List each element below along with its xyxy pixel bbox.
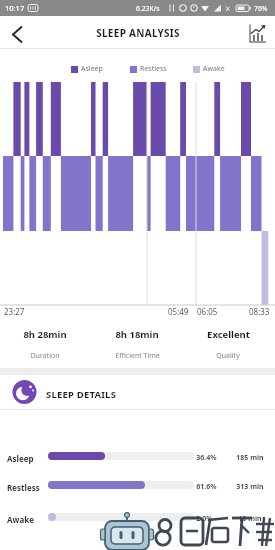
- staticText: 8h 18min: [115, 328, 159, 341]
- staticText: 06:05: [197, 306, 218, 317]
- staticText: SLEEP ANALYSIS: [96, 26, 180, 40]
- staticText: Restless: [140, 64, 167, 74]
- staticText: 8h 28min: [23, 328, 67, 341]
- staticText: Restless: [7, 482, 40, 493]
- staticText: 10:17: [5, 3, 25, 13]
- staticText: Quality: [216, 351, 240, 361]
- button[interactable]: Restless: [0, 480, 275, 494]
- staticText: 36.4%: [196, 453, 217, 463]
- staticText: SLEEP DETAILS: [46, 388, 117, 401]
- button[interactable]: Awake: [0, 512, 275, 526]
- staticText: Duration: [30, 351, 60, 361]
- staticText: 23:27: [4, 306, 25, 317]
- staticText: 61.6%: [196, 482, 217, 492]
- staticText: Asleep: [81, 64, 103, 74]
- staticText: Efficient Time: [115, 351, 160, 361]
- staticText: Asleep: [7, 453, 34, 464]
- staticText: 313 min: [236, 482, 264, 492]
- staticText: Excellent: [207, 328, 250, 341]
- staticText: 6.23K/s: [136, 4, 160, 13]
- button[interactable]: [2, 20, 32, 46]
- button[interactable]: Asleep: [0, 451, 275, 465]
- staticText: 10 min: [238, 514, 262, 524]
- button[interactable]: SLEEP DETAILS: [0, 375, 275, 410]
- staticText: 76%: [254, 4, 268, 13]
- staticText: 2.0%: [196, 514, 213, 524]
- staticText: 08:33: [249, 306, 270, 317]
- button[interactable]: [244, 21, 272, 45]
- staticText: Awake: [203, 64, 225, 74]
- staticText: Awake: [7, 514, 34, 525]
- staticText: 185 min: [236, 453, 264, 463]
- staticText: 05:49: [168, 306, 189, 317]
